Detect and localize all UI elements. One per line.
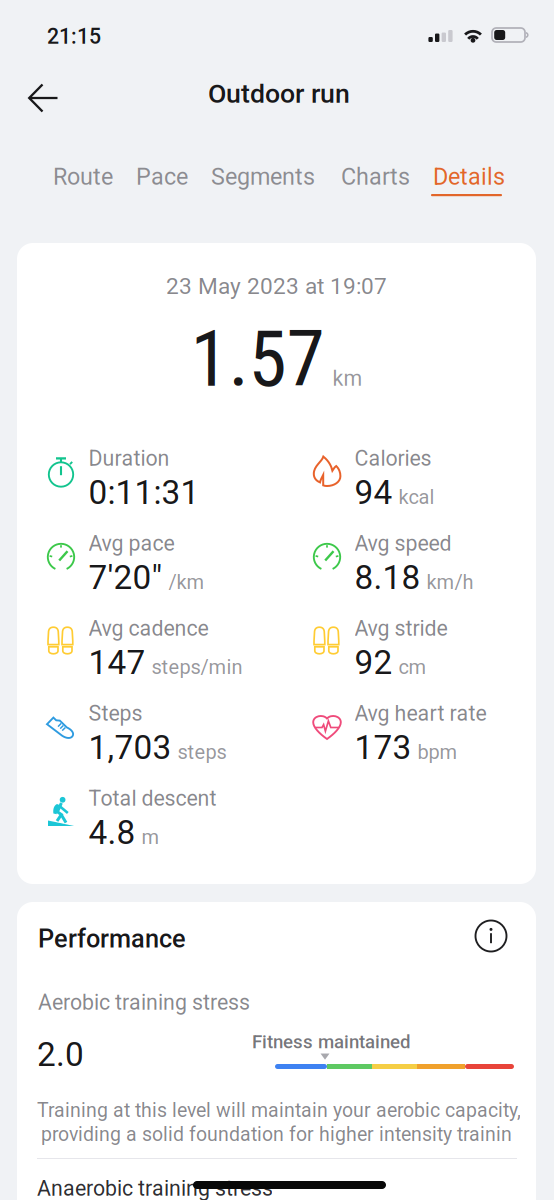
- staticText: Avg heart rate: [355, 701, 487, 726]
- staticText: Route: [53, 163, 113, 190]
- staticText: Training at this level will maintain you…: [37, 1099, 521, 1122]
- staticText: Details: [433, 163, 505, 190]
- staticText: Charts: [341, 163, 410, 190]
- staticText: 8.18: [355, 558, 421, 597]
- staticText: Anaerobic training stress: [37, 1176, 273, 1200]
- staticText: Segments: [211, 163, 315, 190]
- staticText: Avg cadence: [89, 616, 209, 641]
- button[interactable]: Details: [433, 163, 500, 203]
- staticText: 92: [355, 643, 393, 682]
- staticText: 173: [355, 728, 412, 767]
- staticText: 4.8: [89, 813, 136, 852]
- staticText: steps: [178, 740, 227, 764]
- staticText: 23 May 2023 at 19:07: [166, 273, 387, 300]
- button[interactable]: Route: [53, 163, 112, 203]
- staticText: Pace: [136, 163, 188, 190]
- staticText: cm: [399, 655, 427, 679]
- staticText: Duration: [89, 446, 170, 471]
- staticText: bpm: [418, 740, 458, 764]
- staticText: Avg pace: [89, 531, 175, 556]
- staticText: Total descent: [89, 786, 217, 811]
- staticText: Aerobic training stress: [38, 990, 250, 1015]
- staticText: Avg speed: [355, 531, 452, 556]
- staticText: Performance: [38, 924, 186, 954]
- staticText: 2.0: [37, 1035, 84, 1074]
- staticText: Fitness maintained: [252, 1031, 411, 1053]
- staticText: km: [332, 366, 362, 391]
- staticText: 1.57: [190, 314, 324, 405]
- staticText: 0:11:31: [89, 473, 200, 512]
- staticText: kcal: [399, 485, 435, 509]
- staticText: Outdoor run: [208, 78, 350, 109]
- staticText: m: [142, 825, 160, 849]
- staticText: 7'20": [89, 558, 163, 597]
- button[interactable]: Information: [468, 913, 514, 959]
- staticText: Steps: [89, 701, 143, 726]
- staticText: providing a solid foundation for higher …: [41, 1123, 512, 1146]
- staticText: Avg stride: [355, 616, 448, 641]
- staticText: steps/min: [152, 655, 243, 679]
- staticText: 21:15: [47, 24, 101, 49]
- staticText: 1,703: [89, 728, 172, 767]
- button[interactable]: Back: [20, 75, 67, 121]
- staticText: /km: [169, 570, 205, 594]
- button[interactable]: Segments: [211, 163, 316, 203]
- button[interactable]: Charts: [341, 163, 406, 203]
- staticText: 147: [89, 643, 146, 682]
- staticText: Calories: [355, 446, 432, 471]
- staticText: 94: [355, 473, 393, 512]
- staticText: km/h: [427, 570, 474, 594]
- button[interactable]: Pace: [136, 163, 185, 203]
